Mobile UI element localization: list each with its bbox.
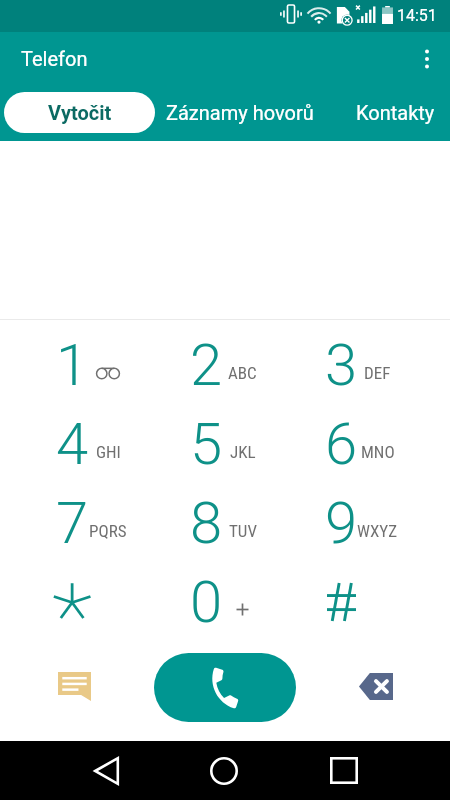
button[interactable]: 7 <box>23 483 157 562</box>
button[interactable] <box>23 562 157 641</box>
staticText: 7 <box>56 489 89 557</box>
staticText: 3 <box>325 331 358 399</box>
staticText: GHI <box>96 442 121 462</box>
staticText: TUV <box>229 521 257 541</box>
button[interactable]: Kontakty <box>340 92 450 133</box>
staticText: Kontakty <box>356 101 435 124</box>
staticText: PQRS <box>89 521 127 541</box>
button[interactable]: Call <box>154 653 296 722</box>
staticText: DEF <box>364 363 391 383</box>
staticText: MNO <box>361 442 395 462</box>
button[interactable] <box>292 562 427 641</box>
button[interactable]: More options <box>404 32 450 85</box>
button[interactable]: Záznamy hovorů <box>160 92 320 133</box>
staticText: 14:51 <box>397 6 437 25</box>
button[interactable]: 6 <box>292 404 427 483</box>
button[interactable]: 4 <box>23 404 157 483</box>
button[interactable]: 5 <box>157 404 292 483</box>
button[interactable]: Messages <box>46 658 102 714</box>
staticText: 2 <box>190 331 223 399</box>
staticText: 5 <box>190 410 223 478</box>
staticText: 4 <box>56 410 89 478</box>
staticText: 8 <box>190 489 223 557</box>
button[interactable]: 9 <box>292 483 427 562</box>
button[interactable]: 1 <box>23 325 157 404</box>
button[interactable]: Home <box>188 741 260 800</box>
button[interactable]: 2 <box>157 325 292 404</box>
staticText: Telefon <box>21 47 88 70</box>
button[interactable]: Vytočit <box>4 92 155 133</box>
staticText: Vytočit <box>48 101 112 124</box>
staticText: ABC <box>228 363 257 383</box>
button[interactable]: 3 <box>292 325 427 404</box>
staticText: JKL <box>230 442 256 462</box>
button[interactable]: Recents <box>308 741 380 800</box>
staticText: 1 <box>56 331 89 399</box>
button[interactable]: Backspace <box>348 658 404 714</box>
button[interactable]: 0 <box>157 562 292 641</box>
staticText: 6 <box>325 410 358 478</box>
staticText: WXYZ <box>357 521 398 541</box>
button[interactable]: 8 <box>157 483 292 562</box>
staticText: Záznamy hovorů <box>166 101 314 124</box>
staticText: 0 <box>190 568 223 636</box>
staticText: 9 <box>325 489 358 557</box>
button[interactable]: Back <box>70 741 142 800</box>
